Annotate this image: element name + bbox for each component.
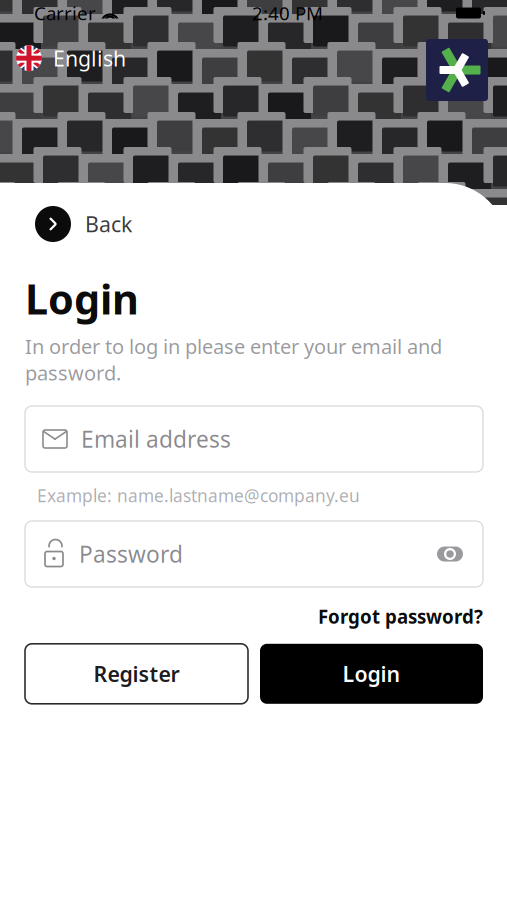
staticText: Example: name.lastname@company.eu — [37, 484, 360, 507]
button[interactable]: Forgot password? — [318, 604, 483, 629]
staticText: Forgot password? — [318, 604, 483, 629]
staticText: In order to log in please enter your ema… — [25, 333, 442, 386]
staticText: Back — [85, 210, 132, 238]
staticText: Login — [25, 271, 139, 326]
staticText: English — [53, 44, 126, 72]
button[interactable]: Back — [35, 206, 132, 242]
button[interactable]: English — [10, 39, 132, 77]
staticText: Register — [93, 660, 179, 688]
staticText: Password — [79, 539, 183, 569]
staticText: Carrier — [34, 1, 96, 25]
button[interactable]: Register — [25, 644, 248, 704]
button[interactable]: Show password — [430, 539, 470, 569]
staticText: Email address — [81, 424, 231, 454]
staticText: 2:40 PM — [252, 1, 323, 25]
button[interactable]: Login — [260, 644, 483, 704]
staticText: Login — [342, 660, 400, 688]
